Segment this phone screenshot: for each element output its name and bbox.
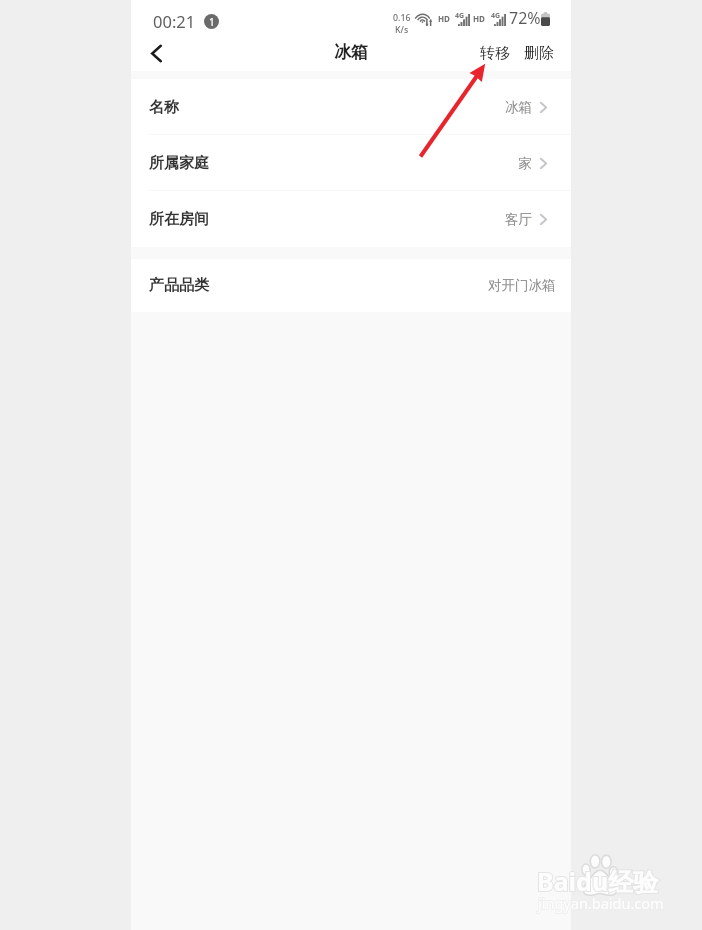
button[interactable]: 删除 (518, 36, 571, 71)
staticText: 名称 (149, 98, 179, 117)
staticText: 产品品类 (149, 276, 209, 295)
staticText: Baidu经验 (537, 864, 659, 898)
staticText: Baidu经验 (537, 864, 659, 898)
button[interactable]: Back (134, 36, 178, 71)
staticText: 0.16 (393, 12, 411, 24)
staticText: 对开门冰箱 (488, 277, 556, 294)
staticText: HD (438, 13, 450, 24)
staticText: jingyan.baidu.com (538, 893, 664, 913)
button[interactable]: 所属家庭 (131, 135, 571, 191)
staticText: 删除 (524, 44, 554, 63)
staticText: 1 (209, 15, 215, 29)
staticText: 冰箱 (505, 99, 532, 116)
staticText: HD (473, 13, 485, 24)
staticText: 转移 (480, 44, 510, 63)
staticText: 所属家庭 (149, 154, 209, 173)
staticText: K/s (395, 24, 409, 36)
staticText: 00:21 (153, 10, 196, 32)
staticText: 所在房间 (149, 210, 209, 229)
button[interactable]: 所在房间 (131, 191, 571, 247)
button[interactable]: 转移 (474, 36, 516, 71)
staticText: 客厅 (505, 211, 532, 228)
staticText: 4G (455, 11, 465, 21)
button[interactable]: 名称 (131, 79, 571, 135)
staticText: 4G (491, 11, 501, 21)
staticText: jingyan.baidu.com (538, 893, 664, 913)
button[interactable]: 产品品类 (131, 259, 571, 312)
staticText: 冰箱 (334, 42, 368, 63)
staticText: 家 (518, 155, 532, 172)
staticText: 72% (509, 7, 541, 29)
